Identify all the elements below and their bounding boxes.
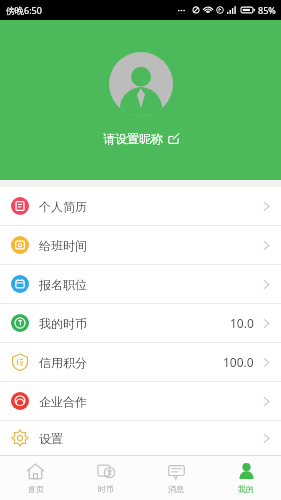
staticText: 时币 [98, 484, 114, 494]
button[interactable]: 信用积分 [0, 343, 281, 382]
staticText: 10.0 [230, 315, 254, 331]
button[interactable]: 个人简历 [0, 187, 281, 226]
staticText: 报名职位 [39, 277, 87, 292]
button[interactable]: 报名职位 [0, 265, 281, 304]
staticText: 请设置昵称 [103, 131, 163, 146]
button[interactable]: 企业合作 [0, 382, 281, 421]
staticText: 个人简历 [39, 199, 87, 214]
staticText: 消息 [168, 484, 184, 494]
button[interactable]: 请设置昵称 [97, 129, 185, 148]
staticText: 给班时间 [39, 238, 87, 253]
button[interactable]: Messages [141, 456, 211, 500]
staticText: 首页 [28, 484, 44, 494]
staticText: 信用积分 [39, 355, 87, 370]
button[interactable]: Profile avatar [109, 52, 173, 116]
staticText: 傍晚6:50 [6, 4, 42, 16]
staticText: 85% [258, 4, 276, 16]
button[interactable]: 我的时币 [0, 304, 281, 343]
staticText: 我的 [238, 484, 254, 494]
button[interactable]: Coins [71, 456, 141, 500]
staticText: 企业合作 [39, 394, 87, 409]
button[interactable]: 给班时间 [0, 226, 281, 265]
button[interactable]: Profile [211, 456, 281, 500]
staticText: 设置 [39, 431, 63, 446]
button[interactable]: 设置 [0, 421, 281, 455]
button[interactable]: Home [0, 456, 71, 500]
staticText: 我的时币 [39, 316, 87, 331]
staticText: 100.0 [223, 354, 254, 370]
